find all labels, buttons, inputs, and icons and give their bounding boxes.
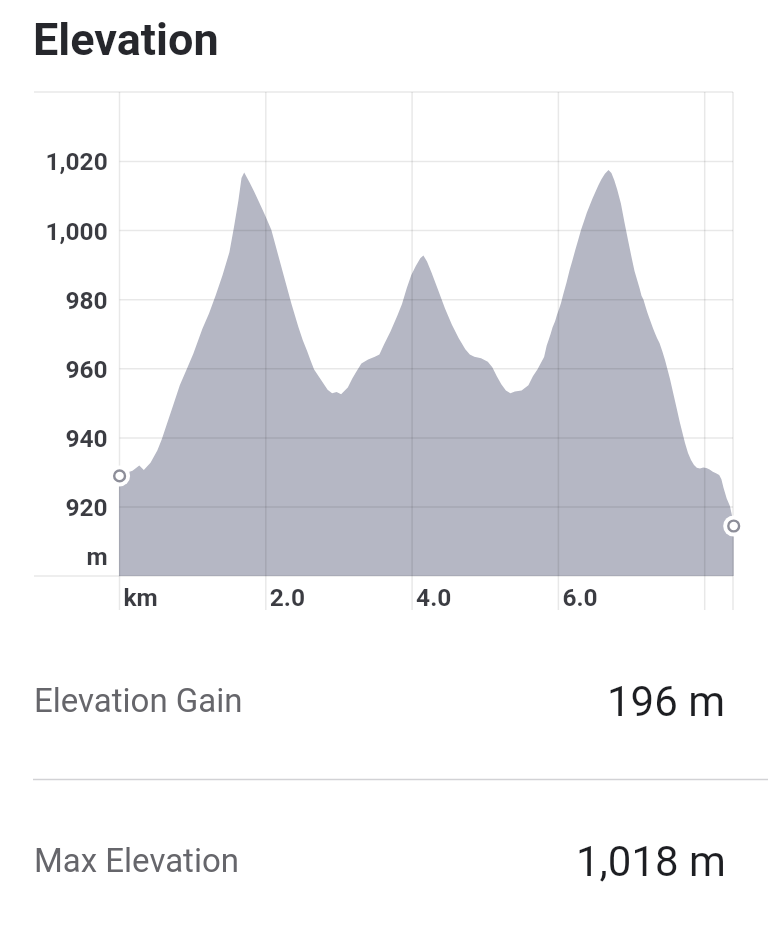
button[interactable]: Elevation Gain 196 m (0, 640, 768, 778)
button[interactable]: Max Elevation 1,018 m (0, 779, 768, 933)
